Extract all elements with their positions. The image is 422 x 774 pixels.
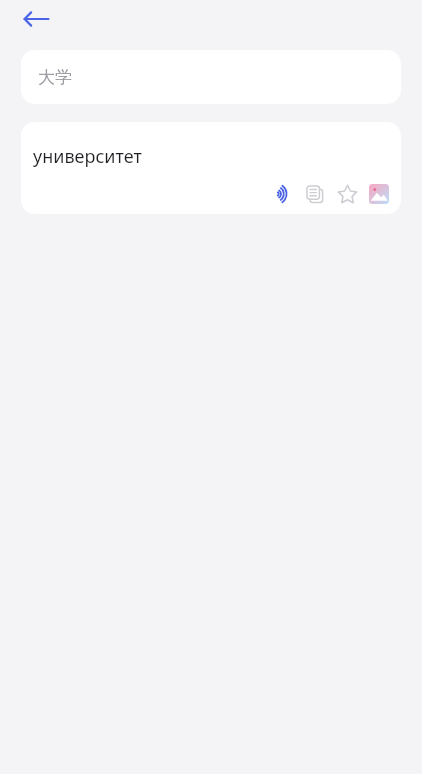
button[interactable]: Listen xyxy=(267,178,299,210)
button[interactable]: Image xyxy=(363,178,395,210)
staticText: 大学 xyxy=(38,67,72,88)
button[interactable]: Back xyxy=(12,2,60,36)
staticText: университет xyxy=(33,144,142,169)
button[interactable]: Favorite xyxy=(331,178,363,210)
button[interactable]: 大学 xyxy=(21,50,401,104)
button[interactable]: Copy xyxy=(299,178,331,210)
